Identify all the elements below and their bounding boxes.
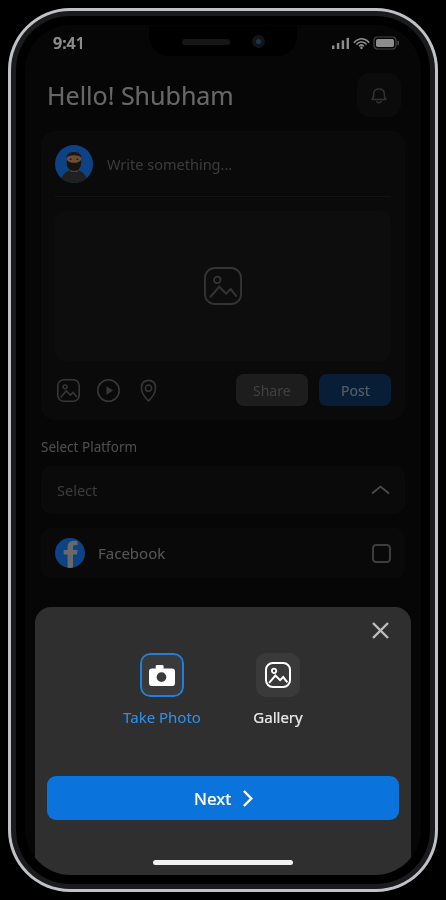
- button[interactable]: Gallery: [253, 653, 303, 727]
- button[interactable]: Post: [319, 374, 391, 406]
- staticText: Select: [57, 480, 98, 500]
- staticText: Next: [194, 787, 232, 810]
- staticText: Hello! Shubham: [47, 78, 234, 112]
- staticText: Write something...: [107, 154, 233, 174]
- staticText: Facebook: [98, 543, 166, 563]
- button[interactable]: Add location: [135, 377, 161, 403]
- staticText: Gallery: [253, 707, 303, 727]
- staticText: Take Photo: [123, 707, 201, 727]
- button[interactable]: Notifications: [357, 73, 401, 117]
- button[interactable]: Share: [236, 374, 308, 406]
- staticText: Select Platform: [41, 438, 138, 456]
- button[interactable]: Close: [367, 617, 393, 643]
- staticText: Share: [253, 381, 291, 400]
- button[interactable]: Add photo: [55, 377, 81, 403]
- button[interactable]: Add media: [55, 211, 391, 361]
- button[interactable]: Facebook: [41, 528, 405, 578]
- button[interactable]: Next: [47, 776, 399, 820]
- staticText: Post: [341, 381, 370, 400]
- button[interactable]: Select: [41, 466, 405, 514]
- staticText: 9:41: [53, 32, 85, 54]
- button[interactable]: Add video: [95, 377, 121, 403]
- button[interactable]: Take Photo: [123, 653, 201, 727]
